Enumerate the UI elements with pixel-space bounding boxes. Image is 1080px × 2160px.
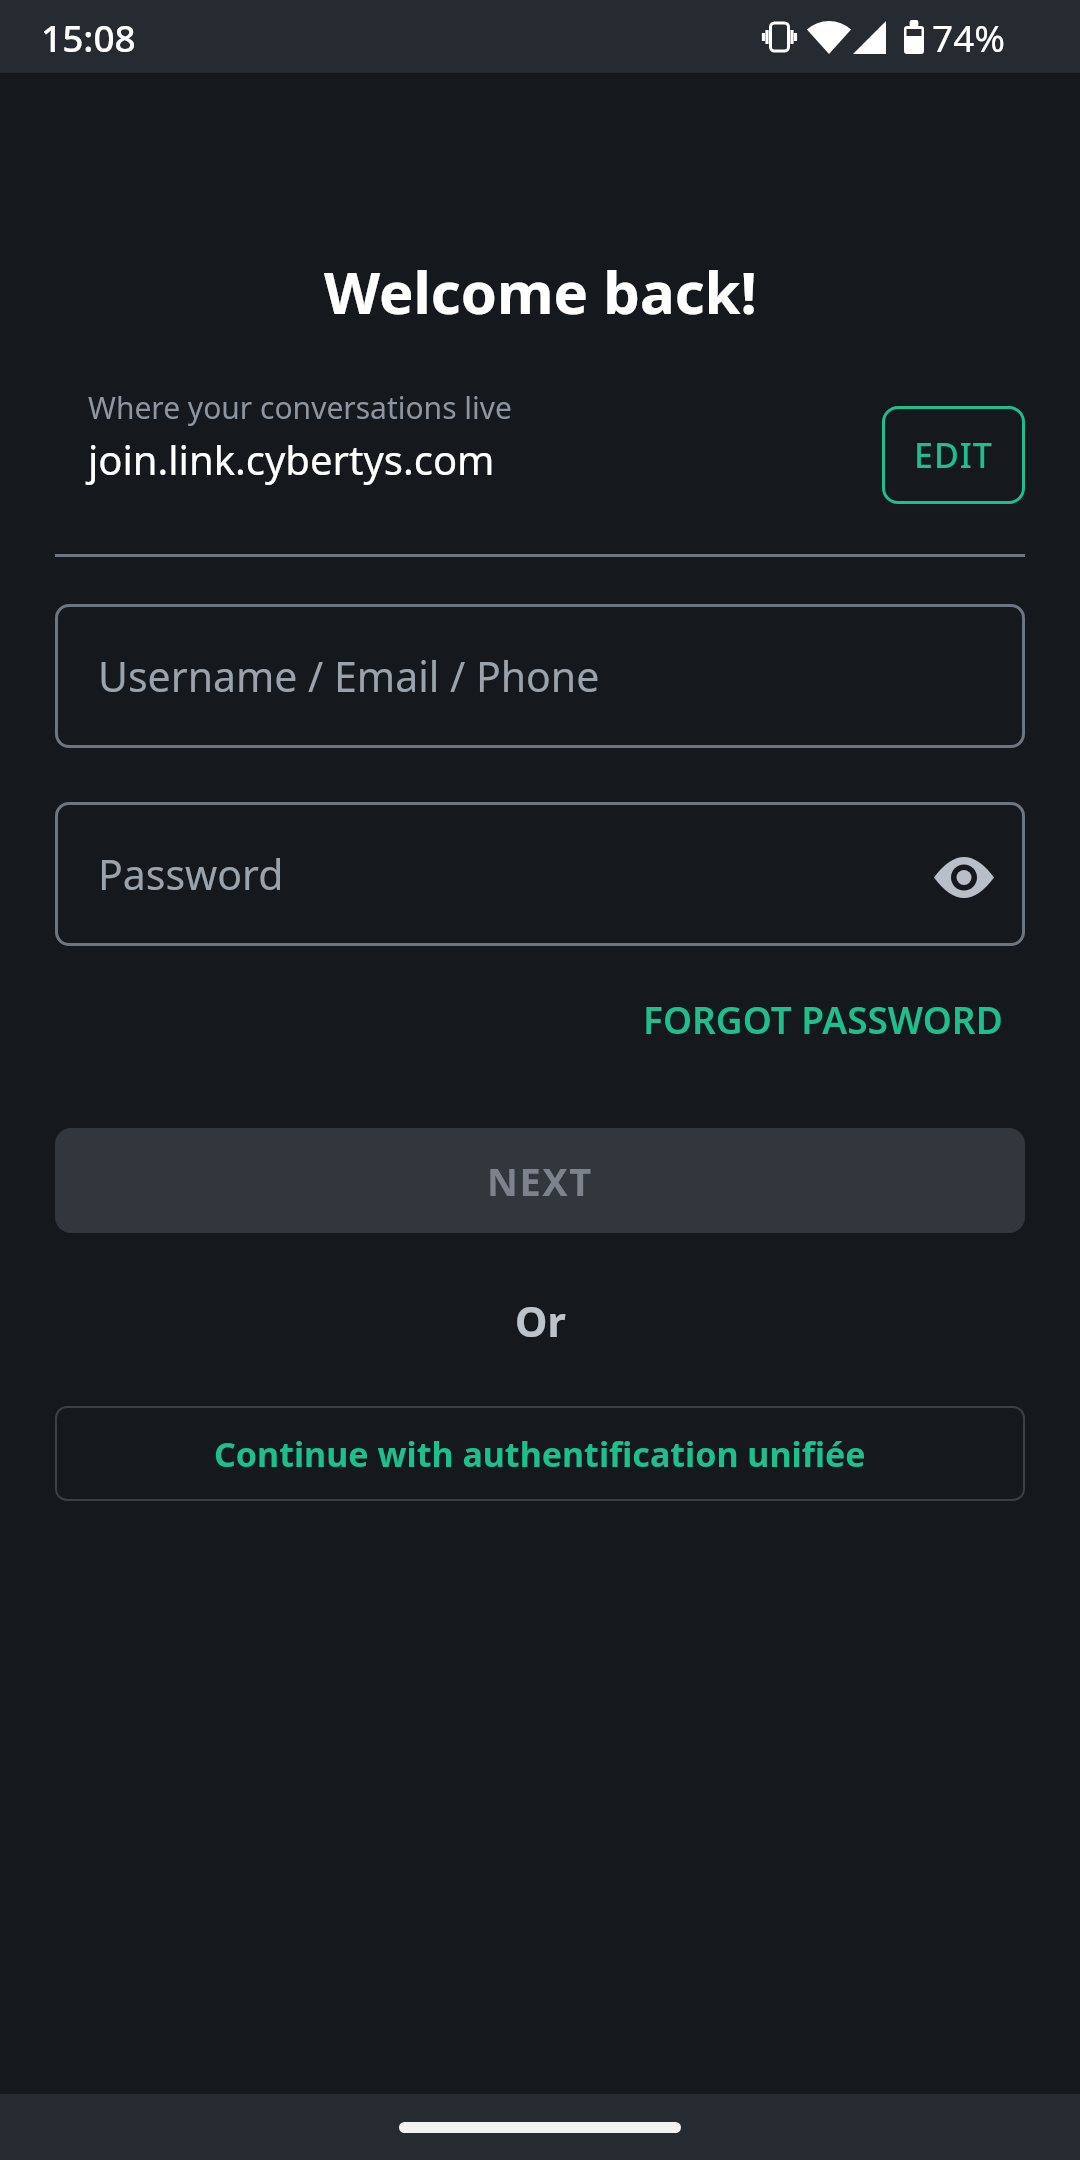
staticText: Continue with authentification unifiée [214,1431,866,1477]
staticText: join.link.cybertys.com [88,432,495,486]
button[interactable]: FORGOT PASSWORD [643,994,1003,1044]
staticText: Username / Email / Phone [98,648,600,704]
staticText: 74% [932,12,1006,62]
button[interactable]: EDIT [882,406,1025,504]
button[interactable]: NEXT [55,1128,1025,1233]
staticText: EDIT [914,432,993,478]
button[interactable]: Password [55,802,1025,946]
staticText: FORGOT PASSWORD [643,994,1003,1044]
staticText: NEXT [487,1155,593,1207]
staticText: Or [515,1293,566,1349]
button[interactable]: Continue with authentification unifiée [55,1406,1025,1501]
staticText: Where your conversations live [88,387,512,428]
staticText: Password [98,846,284,902]
button[interactable] [934,857,994,898]
staticText: Welcome back! [324,252,757,331]
staticText: 15:08 [41,12,136,62]
button[interactable]: Username / Email / Phone [55,604,1025,748]
